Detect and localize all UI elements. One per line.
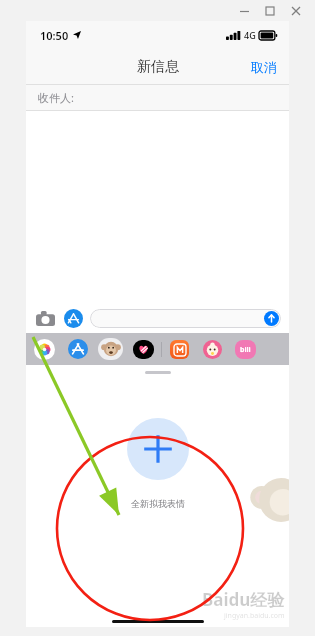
button[interactable]: Mango TV bbox=[167, 338, 192, 360]
button[interactable]: Send bbox=[90, 309, 281, 328]
button[interactable]: Bilibili bbox=[233, 338, 258, 360]
staticText: jingyan.baidu.com bbox=[224, 611, 285, 621]
button[interactable]: Minimize bbox=[231, 2, 257, 20]
button[interactable]: Sticker app bbox=[200, 338, 225, 360]
button[interactable]: App Store bbox=[63, 308, 83, 328]
button[interactable]: 取消 bbox=[239, 53, 289, 81]
staticText: 10:50 bbox=[40, 28, 69, 43]
staticText: 4G bbox=[244, 29, 256, 41]
staticText: 新信息 bbox=[137, 58, 179, 76]
button[interactable]: Digital Touch bbox=[131, 338, 156, 360]
button[interactable]: Maximize bbox=[257, 2, 283, 20]
staticText: 取消 bbox=[251, 59, 277, 75]
staticText: 全新拟我表情 bbox=[131, 498, 185, 509]
button[interactable]: Memoji bbox=[98, 338, 123, 360]
staticText: 收件人: bbox=[38, 90, 74, 105]
button[interactable]: Camera bbox=[34, 307, 56, 329]
button[interactable]: New Memoji bbox=[127, 418, 189, 480]
button[interactable]: Send bbox=[264, 311, 279, 326]
button[interactable]: App Store bbox=[65, 338, 90, 360]
button[interactable]: Photos bbox=[32, 338, 57, 360]
staticText: Baidu经验 bbox=[202, 588, 285, 611]
staticText: bili bbox=[240, 345, 251, 355]
button[interactable]: Close bbox=[283, 2, 309, 20]
